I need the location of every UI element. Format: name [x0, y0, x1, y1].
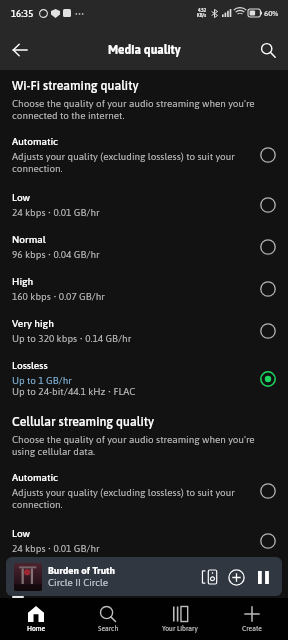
staticText: Very high	[12, 318, 54, 330]
button[interactable]: Pause	[252, 566, 274, 588]
button[interactable]: Low	[0, 528, 288, 554]
button[interactable]: High	[0, 276, 288, 302]
staticText: Adjusts your quality (excluding lossless…	[12, 487, 252, 510]
staticText: Low	[12, 192, 31, 204]
staticText: Your Library	[162, 625, 198, 633]
button[interactable]: Home	[0, 598, 72, 640]
button[interactable]: Back	[6, 36, 34, 64]
button[interactable]: Search	[72, 598, 144, 640]
staticText: Media quality	[108, 43, 181, 57]
button[interactable]: Low	[0, 192, 288, 218]
button[interactable]: Search	[254, 36, 282, 64]
staticText: Adjusts your quality (excluding lossless…	[12, 151, 252, 174]
button[interactable]: Add to playlist	[225, 566, 247, 588]
staticText: Up to 320 kbps • 0.14 GB/hr	[12, 333, 132, 344]
staticText: Home	[27, 625, 46, 633]
staticText: Cellular streaming quality	[12, 414, 154, 428]
staticText: Create	[242, 625, 262, 633]
staticText: Circle II Circle	[48, 577, 109, 588]
staticText: 24 kbps • 0.01 GB/hr	[12, 207, 100, 218]
staticText: Choose the quality of your audio streami…	[12, 98, 255, 121]
button[interactable]: Your Library	[144, 598, 216, 640]
staticText: 160 kbps • 0.07 GB/hr	[12, 291, 105, 302]
staticText: Up to 24-bit/44.1 kHz • FLAC	[12, 386, 136, 397]
staticText: Automatic	[12, 472, 58, 484]
button[interactable]: Connect to a device	[198, 566, 220, 588]
staticText: Choose the quality of your audio streami…	[12, 434, 255, 457]
staticText: 60%	[264, 9, 279, 18]
button[interactable]: Very high	[0, 318, 288, 344]
staticText: 96 kbps • 0.04 GB/hr	[12, 249, 100, 260]
staticText: Wi-Fi streaming quality	[12, 78, 139, 92]
staticText: Burden of Truth	[48, 565, 116, 576]
staticText: Search	[98, 625, 119, 633]
staticText: Up to 1 GB/hr	[12, 375, 72, 386]
staticText: 24 kbps • 0.01 GB/hr	[12, 543, 100, 554]
staticText: Normal	[12, 234, 46, 246]
button[interactable]: Burden of Truth	[6, 557, 282, 596]
staticText: High	[12, 276, 34, 288]
button[interactable]: Automatic	[0, 136, 288, 174]
button[interactable]: Create	[216, 598, 288, 640]
staticText: KB/s	[197, 13, 207, 18]
button[interactable]: Automatic	[0, 472, 288, 510]
staticText: 16:35	[11, 8, 34, 19]
button[interactable]: Lossless	[0, 360, 288, 397]
staticText: Lossless	[12, 360, 48, 372]
button[interactable]: Normal	[0, 234, 288, 260]
staticText: Low	[12, 528, 31, 540]
staticText: 4.52	[198, 8, 207, 13]
staticText: Automatic	[12, 136, 58, 148]
